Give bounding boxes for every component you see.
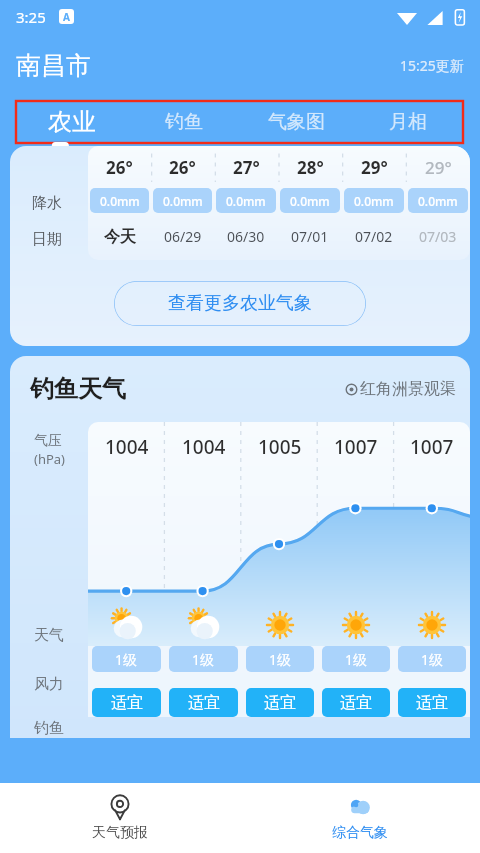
staticText: 南昌市 <box>16 50 91 81</box>
button[interactable]: 月相 <box>352 97 464 146</box>
staticText: 0.0mm <box>226 193 266 209</box>
staticText: 1级 <box>115 650 138 669</box>
staticText: 气压 <box>34 432 62 450</box>
staticText: 今天 <box>104 227 136 247</box>
button[interactable]: 农业 <box>16 97 128 146</box>
staticText: 1004 <box>105 434 149 460</box>
staticText: 适宜 <box>188 693 220 713</box>
staticText: (hPa) <box>34 450 65 468</box>
staticText: 1级 <box>269 650 292 669</box>
staticText: 适宜 <box>264 693 296 713</box>
button[interactable]: 钓鱼 <box>128 97 240 146</box>
staticText: 降水 <box>32 194 62 213</box>
staticText: 0.0mm <box>418 193 458 209</box>
staticText: 1005 <box>258 434 302 460</box>
staticText: 28° <box>297 156 324 179</box>
staticText: 适宜 <box>111 693 143 713</box>
staticText: 1007 <box>410 434 454 460</box>
staticText: 06/30 <box>227 227 265 246</box>
staticText: 07/03 <box>419 227 457 246</box>
other: 综合气象 <box>347 794 373 820</box>
staticText: 07/02 <box>355 227 393 246</box>
button[interactable]: 查看更多农业气象 <box>114 281 366 326</box>
other: 天气预报 <box>107 794 133 820</box>
staticText: 综合气象 <box>332 824 388 842</box>
staticText: 1级 <box>345 650 368 669</box>
staticText: 天气预报 <box>92 824 148 842</box>
staticText: 气象图 <box>268 110 325 134</box>
staticText: 1004 <box>182 434 226 460</box>
staticText: 适宜 <box>416 693 448 713</box>
staticText: 钓鱼天气 <box>30 374 126 404</box>
staticText: 27° <box>233 156 260 179</box>
staticText: 1007 <box>334 434 378 460</box>
staticText: 查看更多农业气象 <box>168 292 312 315</box>
staticText: 日期 <box>32 230 62 249</box>
staticText: 06/29 <box>164 227 202 246</box>
staticText: 29° <box>361 156 388 179</box>
staticText: 红角洲景观渠 <box>360 379 456 399</box>
staticText: A <box>63 10 70 24</box>
staticText: 适宜 <box>340 693 372 713</box>
staticText: 钓鱼 <box>165 110 203 134</box>
staticText: 0.0mm <box>163 193 203 209</box>
staticText: 天气 <box>34 626 64 645</box>
staticText: 0.0mm <box>100 193 140 209</box>
staticText: 月相 <box>389 110 427 134</box>
staticText: 风力 <box>34 675 64 694</box>
staticText: 0.0mm <box>354 193 394 209</box>
button[interactable]: 综合气象 <box>240 783 480 853</box>
button[interactable]: 天气预报 <box>0 783 240 853</box>
staticText: 钓鱼 <box>34 719 64 738</box>
staticText: 3:25 <box>16 7 46 27</box>
staticText: 农业 <box>48 107 96 137</box>
staticText: 1级 <box>192 650 215 669</box>
staticText: 26° <box>169 156 196 179</box>
staticText: 15:25更新 <box>400 56 464 75</box>
button[interactable]: 气象图 <box>240 97 352 146</box>
staticText: 29° <box>425 156 452 179</box>
staticText: 26° <box>106 156 133 179</box>
staticText: 0.0mm <box>290 193 330 209</box>
staticText: 1级 <box>421 650 444 669</box>
staticText: 07/01 <box>291 227 329 246</box>
